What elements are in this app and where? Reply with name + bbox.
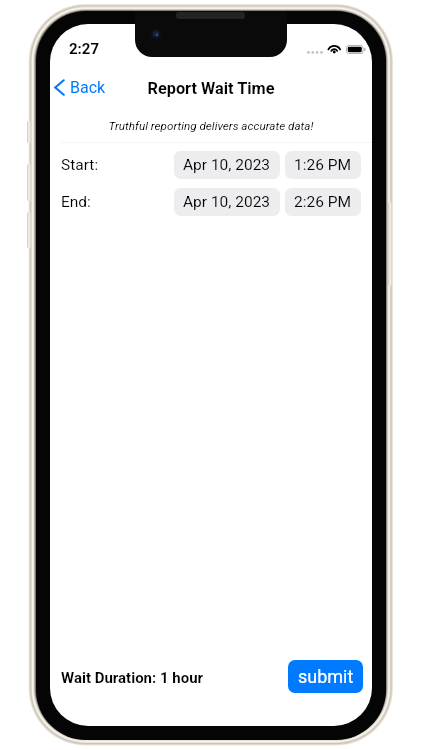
button[interactable]: Back (52, 76, 108, 99)
staticText: Truthful reporting delivers accurate dat… (50, 119, 372, 133)
staticText: submit (298, 666, 354, 687)
button[interactable]: Apr 10, 2023 (174, 151, 280, 179)
button[interactable]: 2:26 PM (285, 188, 361, 216)
other: Back (54, 79, 65, 96)
staticText: Start: (61, 156, 99, 174)
staticText: Back (70, 78, 106, 97)
staticText: End: (61, 193, 91, 211)
staticText: Report Wait Time (50, 79, 372, 98)
button[interactable]: Apr 10, 2023 (174, 188, 280, 216)
button[interactable]: submit (288, 660, 363, 693)
staticText: 2:26 PM (294, 193, 352, 211)
staticText: Apr 10, 2023 (183, 193, 271, 211)
staticText: Wait Duration: 1 hour (61, 669, 204, 687)
button[interactable]: 1:26 PM (285, 151, 361, 179)
staticText: Apr 10, 2023 (183, 156, 271, 174)
staticText: 1:26 PM (294, 156, 352, 174)
staticText: 2:27 (69, 40, 100, 58)
